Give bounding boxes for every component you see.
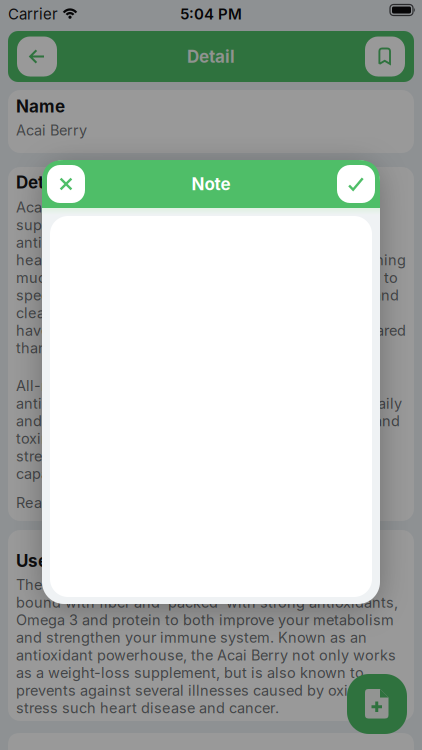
staticText: and strengthen your immune system. Known… bbox=[16, 629, 367, 646]
staticText: prevents against several illnesses cause… bbox=[16, 682, 390, 699]
staticText: stress, supporting the body's natural he… bbox=[16, 447, 328, 465]
staticText: much of the acai pulp is turned into jui… bbox=[16, 269, 398, 286]
staticText: Carrier bbox=[8, 5, 58, 23]
button[interactable]: Add note bbox=[347, 674, 407, 734]
staticText: capacity and overall wellness. bbox=[16, 465, 222, 482]
staticText: cleansing properties. They are known to bbox=[16, 304, 294, 322]
staticText: Uses bbox=[16, 550, 58, 571]
button[interactable]: Bookmark bbox=[365, 36, 405, 76]
staticText: superfood supplement rich in fiber and bbox=[16, 216, 287, 234]
button[interactable]: Close bbox=[47, 165, 85, 203]
staticText: Read more... bbox=[16, 494, 102, 511]
staticText: Note bbox=[191, 174, 230, 194]
staticText: Detail bbox=[187, 46, 235, 67]
staticText: as a weight-loss supplement, but is also… bbox=[16, 664, 364, 681]
staticText: special smoothie blends. The berries are… bbox=[16, 286, 399, 304]
staticText: All-round health boosters, acai berries bbox=[16, 377, 284, 394]
staticText: have more antioxidant content per gram w… bbox=[16, 322, 406, 339]
staticText: Details bbox=[16, 172, 74, 193]
staticText: heart-healthy fats and nutrients, with m… bbox=[16, 251, 406, 269]
staticText: Omega 3 and protein to both improve your… bbox=[16, 611, 394, 629]
staticText: stress such heart disease and cancer. bbox=[16, 699, 279, 717]
staticText: toxins from the body and reduce oxidativ… bbox=[16, 430, 306, 447]
staticText: bound with fiber and packed with strong … bbox=[16, 594, 398, 611]
staticText: antioxidants protect cells from the dama… bbox=[16, 395, 402, 412]
staticText: 5:04 PM bbox=[180, 5, 242, 23]
staticText: antioxidants, vitamins and healthy fats bbox=[16, 234, 283, 251]
button[interactable]: Save bbox=[337, 165, 375, 203]
staticText: Acai berries are widely touted as a bbox=[16, 198, 254, 216]
staticText: than cranberries or blueberries. bbox=[16, 339, 235, 357]
staticText: Name bbox=[16, 96, 65, 117]
staticText: antioxidant powerhouse, the Acai Berry n… bbox=[16, 646, 396, 664]
button[interactable]: Read more... bbox=[16, 494, 102, 511]
staticText: and free radicals. The berries also help… bbox=[16, 412, 400, 430]
staticText: The acai berry is a grape-like fruit tha… bbox=[16, 576, 296, 593]
button[interactable]: Back bbox=[17, 36, 57, 76]
staticText: Acai Berry bbox=[16, 121, 87, 139]
